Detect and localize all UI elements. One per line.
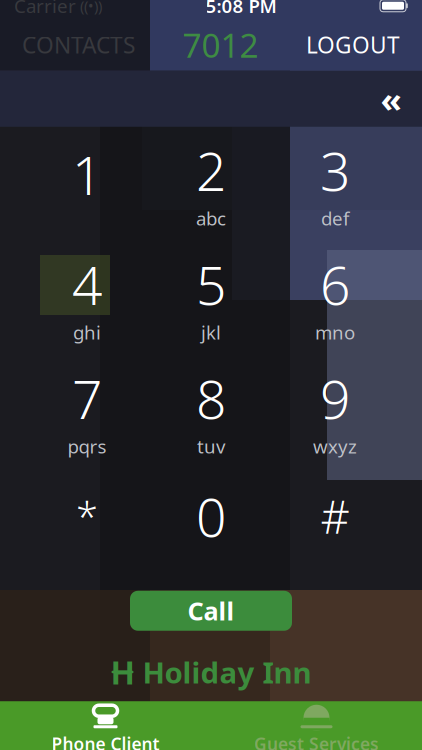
staticText: 1 [72, 139, 102, 210]
staticText: 9 [320, 363, 350, 434]
button[interactable]: 8 tuv [149, 361, 273, 461]
button[interactable]: 7 pqrs [25, 361, 149, 461]
button[interactable]: # [273, 475, 397, 575]
staticText: Phone Client [51, 732, 159, 750]
button[interactable]: 1 [25, 133, 149, 233]
staticText: ((•)) [76, 0, 102, 15]
staticText: def [321, 206, 349, 231]
button[interactable]: LOGOUT [292, 20, 414, 70]
staticText: pqrs [67, 434, 106, 459]
button[interactable]: 9 wxyz [273, 361, 397, 461]
staticText: 5 [196, 249, 226, 320]
button[interactable]: CONTACTS [8, 20, 149, 70]
staticText: 3 [320, 135, 350, 206]
staticText: 6 [320, 249, 350, 320]
staticText: Call [187, 594, 234, 627]
staticText: ghi [73, 320, 101, 345]
staticText: 5:08 PM [205, 0, 276, 18]
staticText: # [320, 486, 349, 546]
staticText: H [110, 651, 134, 693]
staticText: 2 [196, 135, 226, 206]
button[interactable]: Phone Client [0, 699, 211, 750]
button[interactable]: Call [130, 591, 292, 631]
button[interactable]: 0 [149, 475, 273, 575]
staticText: tuv [197, 434, 225, 459]
staticText: « [380, 76, 401, 122]
staticText: wxyz [313, 434, 357, 459]
staticText: 7 [72, 363, 102, 434]
staticText: 8 [196, 363, 226, 434]
button[interactable]: 2 abc [149, 133, 273, 233]
staticText: mno [315, 320, 355, 345]
button[interactable]: 3 def [273, 133, 397, 233]
button[interactable]: Guest Services [211, 699, 422, 750]
staticText: abc [196, 206, 226, 231]
staticText: 7012 [182, 23, 258, 67]
staticText: Guest Services [254, 732, 379, 750]
staticText: * [76, 490, 98, 543]
staticText: CONTACTS [22, 30, 135, 60]
button[interactable]: 4 ghi [25, 247, 149, 347]
button[interactable]: 6 mno [273, 247, 397, 347]
staticText: Carrier [14, 0, 76, 18]
button[interactable]: Backspace [360, 71, 422, 127]
button[interactable]: 5 jkl [149, 247, 273, 347]
staticText: Holiday Inn [142, 652, 311, 691]
staticText: 4 [72, 249, 102, 320]
button[interactable]: * [25, 475, 149, 575]
staticText: jkl [201, 320, 221, 345]
staticText: 0 [196, 481, 226, 552]
staticText: LOGOUT [306, 30, 400, 60]
